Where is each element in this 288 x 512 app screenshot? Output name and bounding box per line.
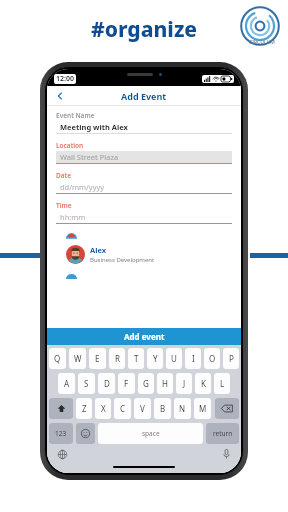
staticText: 123: [55, 429, 67, 438]
button[interactable]: C: [114, 398, 131, 419]
staticText: return: [213, 429, 233, 438]
staticText: I: [192, 353, 195, 364]
button[interactable]: N: [174, 398, 191, 419]
button[interactable]: [60, 270, 228, 279]
button[interactable]: B: [154, 398, 171, 419]
staticText: CIRCULUM: [249, 39, 275, 46]
button[interactable]: S: [78, 373, 95, 394]
button[interactable]: space: [98, 423, 203, 444]
staticText: Business Development: [90, 256, 155, 264]
staticText: Event Name: [56, 111, 95, 120]
staticText: W: [74, 353, 82, 364]
button[interactable]: A: [58, 373, 75, 394]
staticText: Add Event: [121, 90, 167, 102]
button[interactable]: Back: [53, 89, 67, 103]
button[interactable]: W: [69, 348, 86, 369]
button[interactable]: I: [185, 348, 201, 369]
button[interactable]: T: [128, 348, 144, 369]
staticText: O: [209, 353, 216, 364]
other: Circulum logo: [240, 6, 284, 50]
staticText: Q: [54, 353, 61, 364]
staticText: hh:mm: [60, 212, 86, 222]
button[interactable]: P: [223, 348, 239, 369]
staticText: Date: [56, 171, 72, 180]
staticText: M: [199, 403, 207, 414]
button[interactable]: X: [95, 398, 111, 419]
button[interactable]: Shift: [49, 398, 73, 419]
staticText: E: [95, 353, 100, 364]
staticText: C: [120, 403, 126, 414]
staticText: space: [142, 429, 160, 438]
button[interactable]: H: [157, 373, 173, 394]
button[interactable]: Emoji: [76, 423, 95, 444]
staticText: S: [84, 378, 89, 389]
button[interactable]: D: [98, 373, 115, 394]
staticText: D: [104, 378, 110, 389]
staticText: K: [201, 378, 206, 389]
button[interactable]: Q: [49, 348, 66, 369]
button[interactable]: Change keyboard: [56, 448, 68, 460]
staticText: Y: [153, 353, 158, 364]
staticText: A: [64, 378, 70, 389]
button[interactable]: U: [166, 348, 182, 369]
button[interactable]: Alex: [61, 242, 227, 267]
button[interactable]: Add event: [47, 328, 241, 345]
button[interactable]: K: [195, 373, 211, 394]
staticText: Alex: [90, 245, 107, 255]
staticText: Z: [82, 403, 87, 414]
staticText: R: [115, 353, 120, 364]
staticText: Wall Street Plaza: [60, 152, 119, 162]
staticText: P: [229, 353, 234, 364]
staticText: #organize: [91, 15, 198, 44]
staticText: J: [183, 378, 186, 389]
button[interactable]: return: [206, 423, 239, 444]
button[interactable]: [60, 230, 228, 239]
staticText: H: [162, 378, 168, 389]
staticText: Add event: [124, 331, 165, 342]
staticText: Location: [56, 141, 84, 150]
button[interactable]: O: [204, 348, 220, 369]
button[interactable]: E: [89, 348, 106, 369]
staticText: N: [179, 403, 186, 414]
staticText: L: [220, 378, 225, 389]
button[interactable]: V: [134, 398, 151, 419]
button[interactable]: Dictation: [220, 448, 232, 460]
staticText: B: [160, 403, 166, 414]
button[interactable]: Y: [147, 348, 163, 369]
staticText: dd/mm/yyyy: [60, 182, 105, 192]
staticText: X: [101, 403, 106, 414]
staticText: 12:00: [56, 74, 74, 84]
staticText: T: [134, 353, 139, 364]
staticText: U: [171, 353, 177, 364]
staticText: G: [143, 378, 149, 389]
staticText: V: [140, 403, 145, 414]
button[interactable]: G: [138, 373, 154, 394]
staticText: F: [124, 378, 129, 389]
staticText: Meeting with Alex: [60, 122, 128, 132]
button[interactable]: J: [176, 373, 192, 394]
button[interactable]: L: [214, 373, 230, 394]
staticText: Time: [56, 201, 72, 210]
button[interactable]: M: [194, 398, 211, 419]
button[interactable]: Z: [76, 398, 92, 419]
button[interactable]: R: [109, 348, 125, 369]
button[interactable]: Backspace: [215, 398, 239, 419]
button[interactable]: F: [118, 373, 135, 394]
button[interactable]: 123: [49, 423, 73, 444]
